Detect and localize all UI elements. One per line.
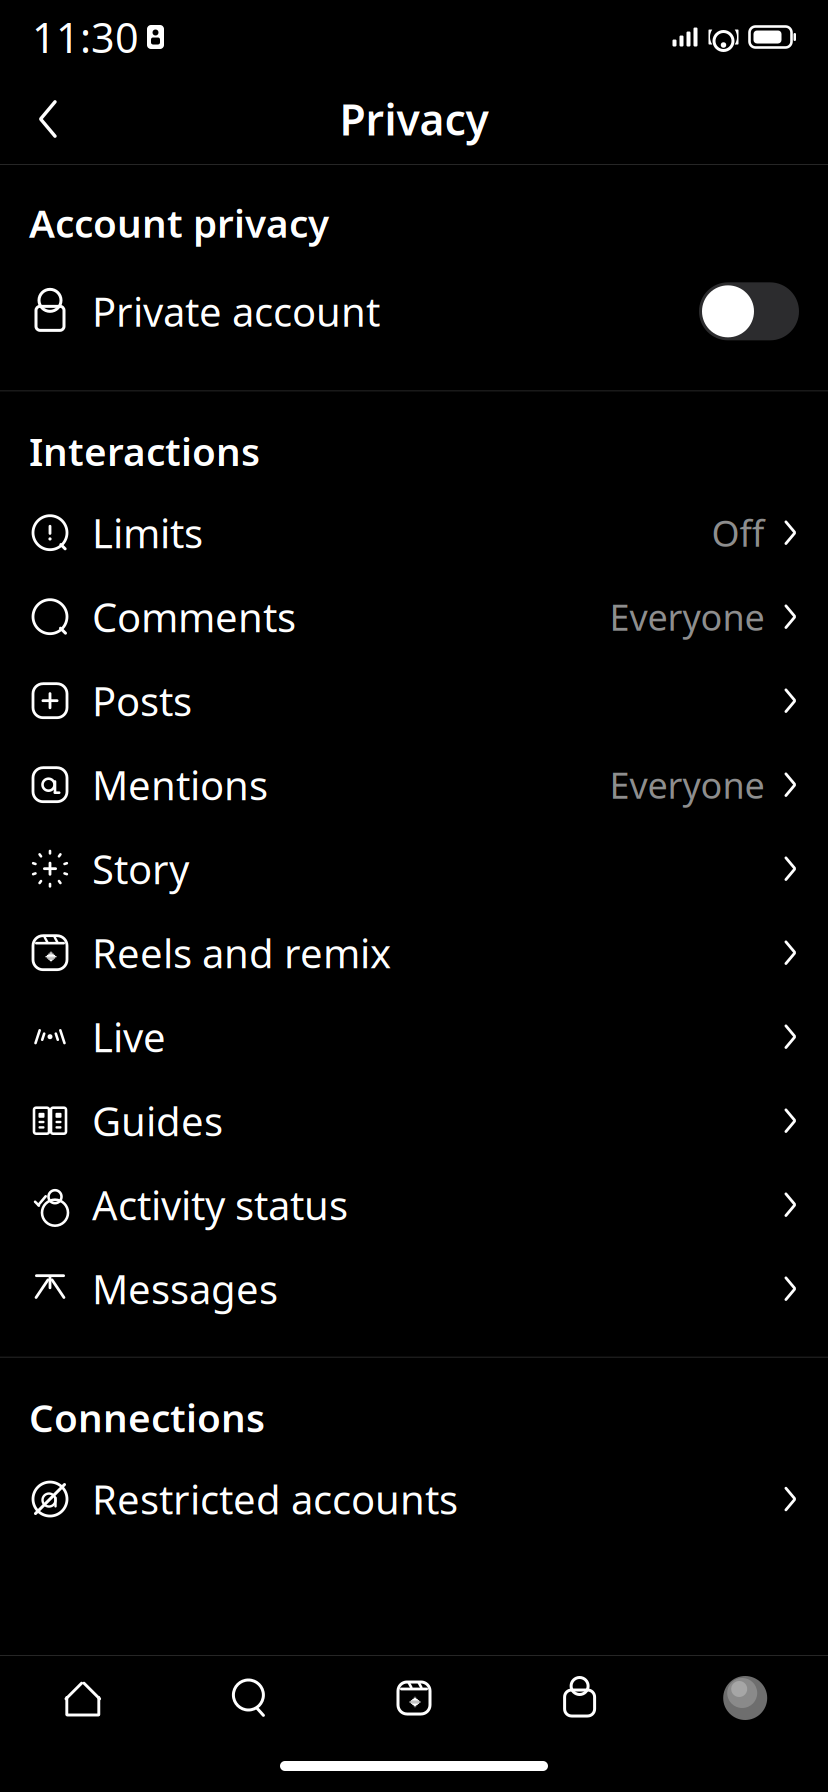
staticText: Restricted accounts: [92, 1472, 458, 1526]
button[interactable]: Limits: [0, 491, 828, 575]
button[interactable]: Live: [0, 995, 828, 1079]
button[interactable]: Search: [166, 1656, 331, 1740]
staticText: Connections: [29, 1392, 265, 1443]
staticText: Activity status: [92, 1178, 348, 1231]
button[interactable]: Posts: [0, 659, 828, 743]
staticText: Limits: [92, 506, 203, 559]
staticText: Mentions: [92, 758, 268, 811]
button[interactable]: Back: [20, 91, 76, 147]
staticText: Privacy: [339, 91, 488, 147]
staticText: Messages: [92, 1262, 278, 1315]
staticText: Private account: [92, 285, 380, 338]
button[interactable]: Shop: [497, 1656, 662, 1740]
button[interactable]: Profile: [662, 1656, 828, 1740]
staticText: 11:30: [32, 10, 139, 64]
staticText: Posts: [92, 674, 192, 727]
button[interactable]: Restricted accounts: [0, 1457, 828, 1541]
staticText: Interactions: [29, 425, 260, 477]
staticText: Off: [711, 509, 764, 557]
button[interactable]: Reels: [331, 1656, 497, 1740]
button[interactable]: Mentions: [0, 743, 828, 827]
button[interactable]: Messages: [0, 1247, 828, 1331]
staticText: Comments: [92, 590, 296, 643]
staticText: Account privacy: [29, 197, 329, 248]
button[interactable]: Guides: [0, 1079, 828, 1163]
staticText: Guides: [92, 1094, 223, 1147]
staticText: Live: [92, 1010, 166, 1063]
button[interactable]: Home: [0, 1656, 166, 1740]
staticText: Story: [92, 842, 189, 895]
button[interactable]: Private account: [0, 266, 828, 356]
button[interactable]: Activity status: [0, 1163, 828, 1247]
button[interactable]: Reels and remix: [0, 911, 828, 995]
staticText: Reels and remix: [92, 926, 391, 979]
button[interactable]: Story: [0, 827, 828, 911]
staticText: Everyone: [609, 593, 764, 641]
staticText: Everyone: [609, 761, 764, 809]
button[interactable]: Comments: [0, 575, 828, 659]
